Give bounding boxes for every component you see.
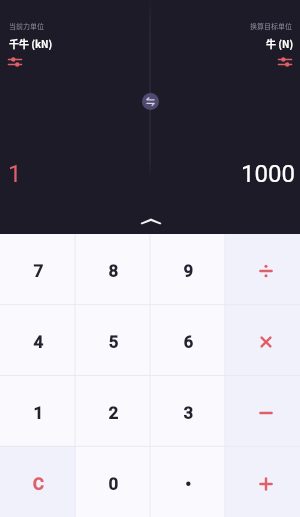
staticText: 3 [183,403,193,423]
button[interactable]: 4 [0,304,75,375]
button[interactable]: 1 [0,375,75,446]
staticText: 7 [33,261,43,281]
button[interactable]: Choose unit [8,57,22,67]
button[interactable]: Swap units [142,93,159,110]
button[interactable]: Subtract [225,375,300,446]
staticText: 当前力单位 [9,21,44,31]
button[interactable]: 8 [75,234,150,304]
staticText: 9 [183,261,193,281]
staticText: 8 [108,261,118,281]
button[interactable]: Add [225,446,300,517]
staticText: • [185,474,191,494]
staticText: 1 [8,160,22,188]
button[interactable]: Expand history [133,207,169,235]
button[interactable]: 7 [0,234,75,304]
button[interactable]: Multiply [225,304,300,375]
button[interactable]: 0 [75,446,150,517]
button[interactable]: Choose unit [278,57,292,67]
button[interactable]: 6 [150,304,225,375]
staticText: 2 [108,403,118,423]
staticText: 6 [183,332,193,352]
staticText: 换算目标单位 [250,21,292,31]
staticText: 千牛 (kN) [9,36,53,50]
staticText: 4 [33,332,43,352]
staticText: C [32,474,44,494]
staticText: 1000 [241,160,295,188]
staticText: 牛 (N) [266,36,294,50]
button[interactable]: 5 [75,304,150,375]
staticText: 5 [108,332,118,352]
button[interactable]: 9 [150,234,225,304]
button[interactable]: Divide [225,234,300,304]
staticText: 0 [108,474,118,494]
button[interactable]: C [0,446,75,517]
button[interactable]: 3 [150,375,225,446]
button[interactable]: 2 [75,375,150,446]
button[interactable]: • [150,446,225,517]
staticText: 1 [33,403,43,423]
